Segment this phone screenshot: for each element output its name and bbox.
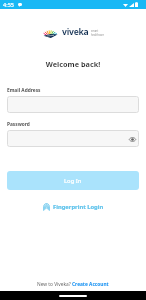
staticText: Password bbox=[7, 121, 30, 128]
staticText: Email Address bbox=[7, 87, 41, 94]
staticText: smart bbox=[91, 29, 99, 33]
button[interactable]: Log In bbox=[7, 171, 139, 190]
staticText: viveka bbox=[62, 26, 89, 38]
staticText: New to Viveka? bbox=[37, 281, 72, 288]
button[interactable]: Create Account bbox=[72, 281, 109, 288]
staticText: 4:55 bbox=[3, 1, 14, 8]
button[interactable]: Home bbox=[59, 295, 87, 297]
button[interactable]: Fingerprint Login bbox=[0, 203, 146, 211]
staticText: Log In bbox=[64, 177, 82, 185]
staticText: Welcome back! bbox=[0, 59, 146, 69]
button[interactable]: Show password bbox=[128, 135, 136, 143]
staticText: Create Account bbox=[72, 281, 109, 288]
staticText: Fingerprint Login bbox=[53, 203, 104, 211]
staticText: healthcare bbox=[91, 33, 104, 37]
button[interactable]: Show password bbox=[7, 130, 139, 147]
button[interactable] bbox=[7, 96, 139, 113]
